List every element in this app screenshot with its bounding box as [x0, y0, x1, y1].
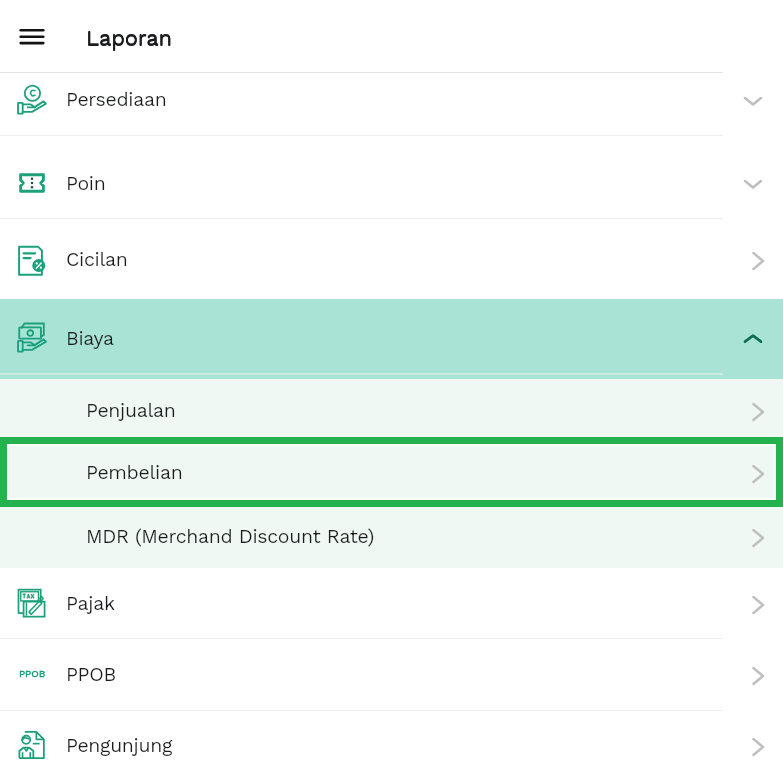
staticText: Biaya	[66, 327, 114, 350]
staticText: MDR (Merchand Discount Rate)	[86, 525, 375, 548]
staticText: Poin	[66, 172, 106, 195]
staticText: Pengunjung	[66, 734, 172, 757]
staticText: Laporan	[86, 25, 172, 51]
button[interactable]	[0, 299, 783, 379]
staticText: Laporan	[86, 25, 172, 51]
button[interactable]	[0, 638, 783, 710]
staticText: Laporan	[86, 26, 172, 52]
button[interactable]	[0, 568, 783, 638]
staticText: Persediaan	[66, 88, 167, 111]
staticText: Pembelian	[86, 461, 183, 484]
button[interactable]	[0, 379, 783, 442]
button[interactable]	[0, 72, 783, 135]
button[interactable]	[0, 710, 783, 780]
button[interactable]	[0, 505, 783, 568]
staticText: Pembelian	[86, 461, 183, 484]
button[interactable]: Open navigation menu	[10, 14, 54, 58]
staticText: PPOB	[66, 663, 116, 686]
button[interactable]	[0, 135, 783, 218]
staticText: PPOB	[19, 668, 46, 680]
button[interactable]	[0, 441, 783, 504]
staticText: Penjualan	[86, 399, 176, 422]
staticText: Pajak	[66, 592, 115, 615]
button[interactable]	[9, 446, 774, 498]
staticText: Cicilan	[66, 248, 128, 271]
staticText: Laporan	[86, 26, 172, 52]
button[interactable]	[0, 218, 783, 299]
